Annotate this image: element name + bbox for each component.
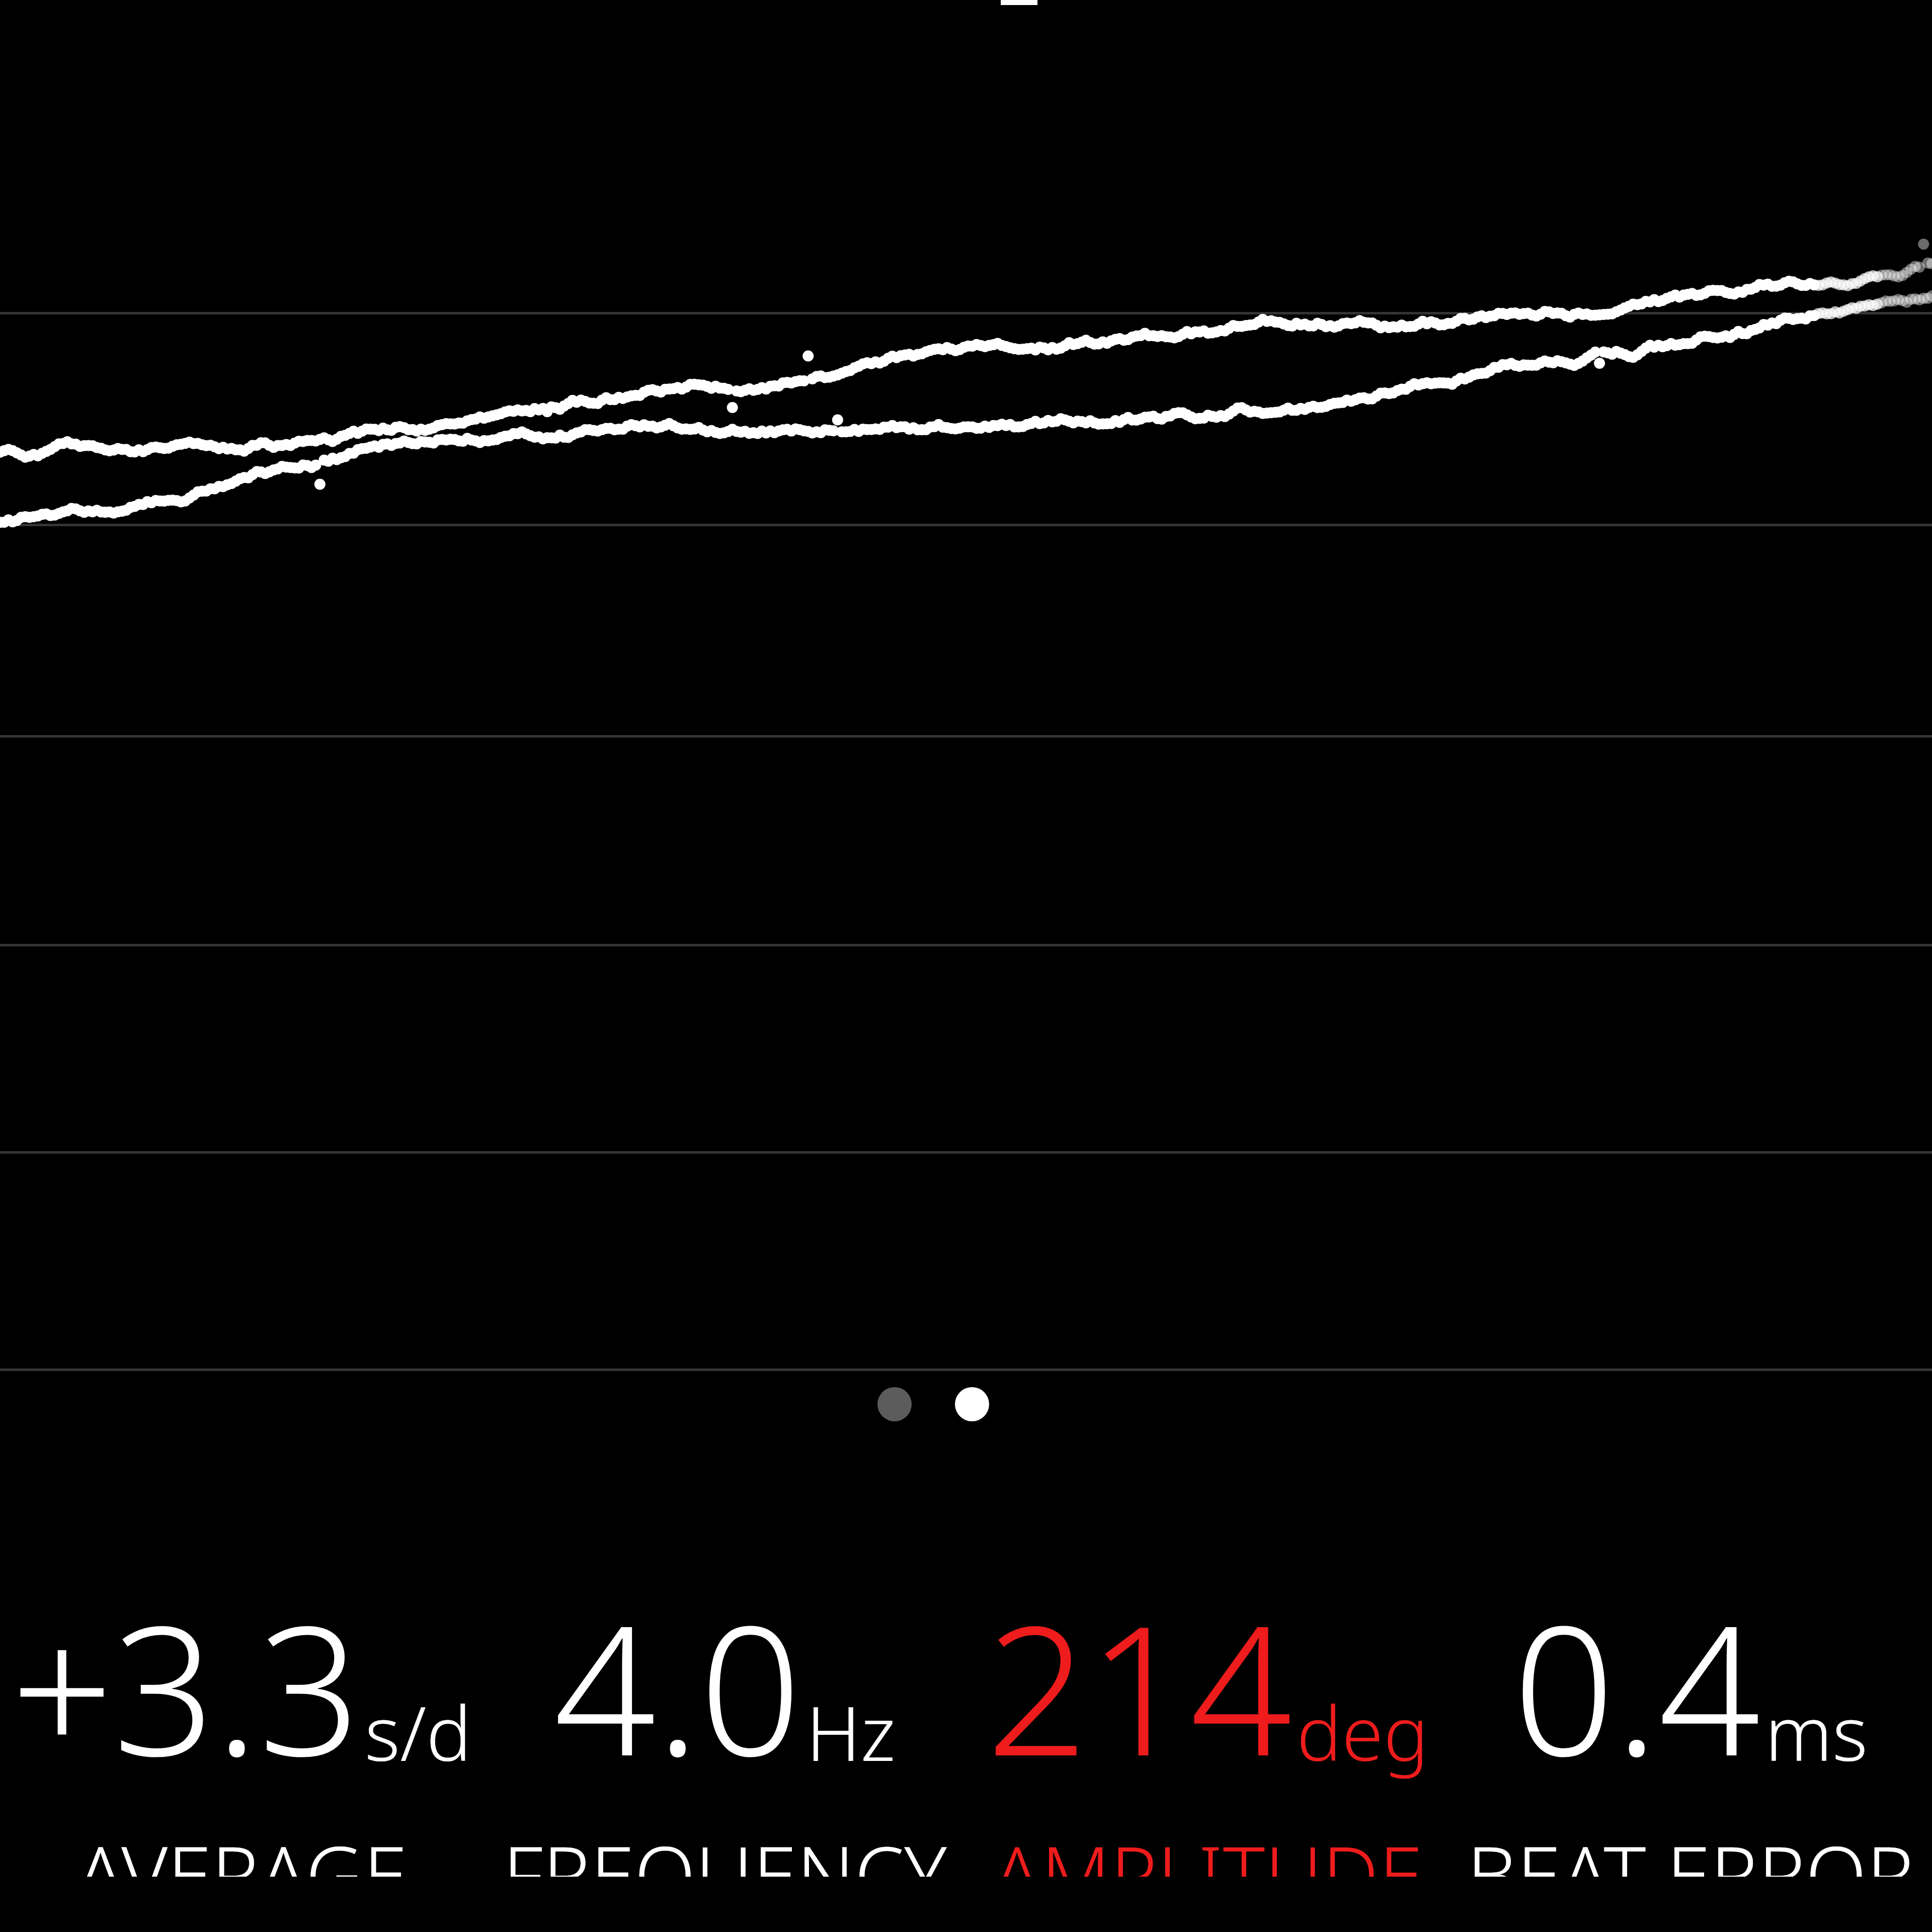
- staticText: 214: [986, 1565, 1293, 1808]
- button[interactable]: +3.3: [0, 1565, 483, 1877]
- staticText: 4.0: [554, 1565, 802, 1808]
- button[interactable]: 0.4: [1449, 1565, 1932, 1877]
- staticText: 0.4: [1513, 1565, 1761, 1808]
- staticText: s/d: [365, 1680, 472, 1783]
- staticText: AVERAGE: [76, 1819, 408, 1877]
- button[interactable]: 4.0: [483, 1565, 966, 1877]
- staticText: Hz: [806, 1680, 896, 1783]
- staticText: AMPLITUDE: [993, 1819, 1423, 1877]
- staticText: ms: [1765, 1680, 1868, 1783]
- staticText: FREQUENCY: [503, 1819, 947, 1877]
- staticText: deg: [1297, 1680, 1429, 1783]
- button[interactable]: Go to graph page 1: [877, 1387, 912, 1421]
- staticText: BEAT ERROR: [1467, 1819, 1914, 1877]
- staticText: +3.3: [11, 1565, 361, 1808]
- button[interactable]: 214: [966, 1565, 1449, 1877]
- button[interactable]: Graph page 2, selected: [955, 1387, 989, 1421]
